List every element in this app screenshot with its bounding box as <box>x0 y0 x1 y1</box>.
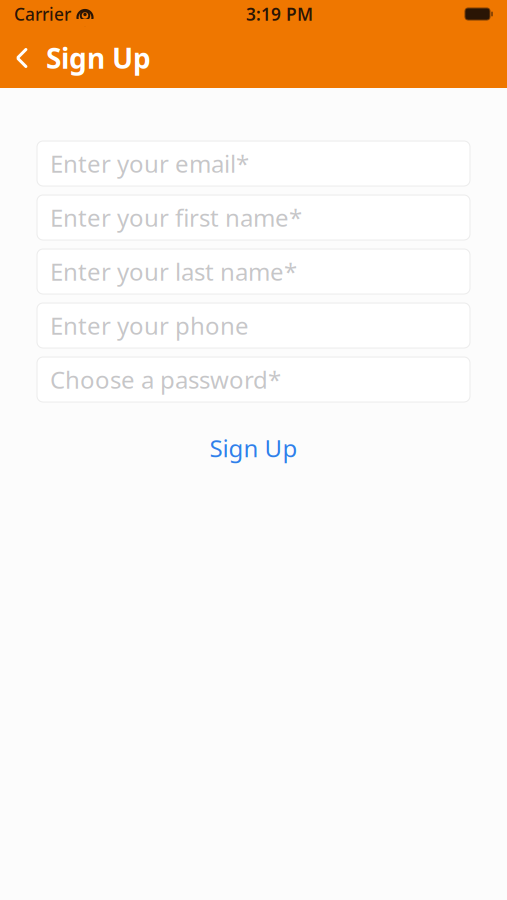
staticText: Enter your last name* <box>50 256 297 287</box>
staticText: Carrier <box>14 2 71 25</box>
button[interactable]: Back <box>0 28 44 88</box>
staticText: Enter your email* <box>50 148 249 179</box>
staticText: Enter your phone <box>50 310 249 341</box>
button[interactable]: Sign Up <box>37 424 470 472</box>
staticText: Sign Up <box>209 432 297 464</box>
staticText: Choose a password* <box>50 364 281 395</box>
staticText: Enter your first name* <box>50 202 302 233</box>
staticText: Sign Up <box>46 39 151 77</box>
staticText: 3:19 PM <box>246 2 313 25</box>
